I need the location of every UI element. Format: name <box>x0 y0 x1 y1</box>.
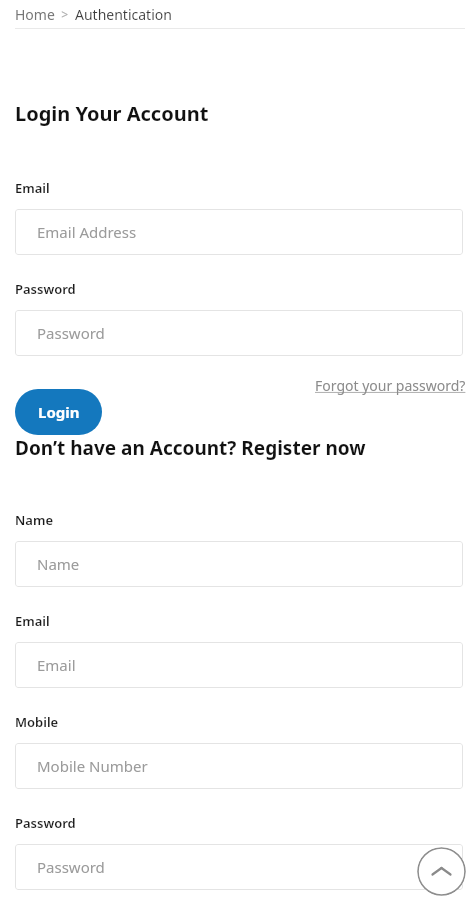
staticText: Mobile <box>15 713 59 731</box>
button[interactable]: Password <box>15 310 463 356</box>
staticText: Email <box>15 612 50 630</box>
button[interactable]: Password <box>15 844 463 890</box>
staticText: Home <box>15 5 55 24</box>
staticText: Login Your Account <box>15 100 209 127</box>
staticText: Mobile Number <box>37 756 148 776</box>
button[interactable]: Mobile Number <box>15 743 463 789</box>
staticText: Forgot your password? <box>315 376 466 395</box>
staticText: Authentication <box>75 5 172 24</box>
staticText: Password <box>37 857 105 877</box>
button[interactable]: Login <box>15 389 102 435</box>
staticText: Email <box>15 179 50 197</box>
staticText: Email Address <box>37 222 137 242</box>
staticText: Don’t have an Account? Register now <box>15 435 366 461</box>
button[interactable]: Scroll to top <box>417 847 466 896</box>
staticText: Password <box>15 814 76 832</box>
staticText: Name <box>15 511 53 529</box>
staticText: Email <box>37 655 76 675</box>
button[interactable]: Name <box>15 541 463 587</box>
button[interactable]: Forgot your password? <box>315 376 466 395</box>
staticText: Password <box>37 323 105 343</box>
staticText: Login <box>38 402 80 422</box>
button[interactable]: Email Address <box>15 209 463 255</box>
staticText: Name <box>37 554 80 574</box>
button[interactable]: Home <box>15 5 55 24</box>
button[interactable]: Email <box>15 642 463 688</box>
staticText: Password <box>15 280 76 298</box>
staticText: > <box>55 6 75 22</box>
